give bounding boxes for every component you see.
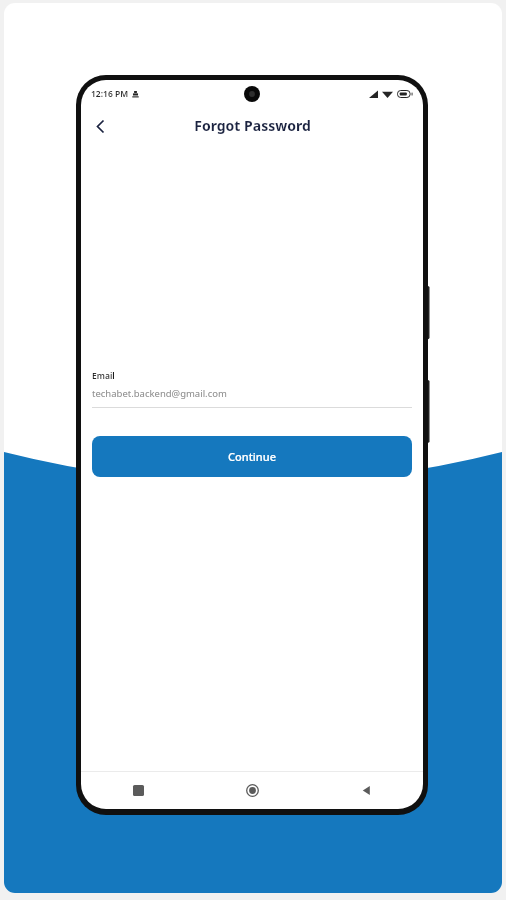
staticText: 12:16 PM <box>91 88 129 100</box>
staticText: Email <box>92 370 115 382</box>
staticText: Continue <box>228 449 276 464</box>
staticText: Forgot Password <box>194 116 311 135</box>
button[interactable]: Back <box>309 772 423 809</box>
staticText: techabet.backend@gmail.com <box>92 387 227 400</box>
button[interactable]: Back <box>84 110 116 142</box>
button[interactable]: Continue <box>92 436 412 477</box>
button[interactable]: Recent apps <box>81 772 195 809</box>
button[interactable]: Home <box>195 772 309 809</box>
